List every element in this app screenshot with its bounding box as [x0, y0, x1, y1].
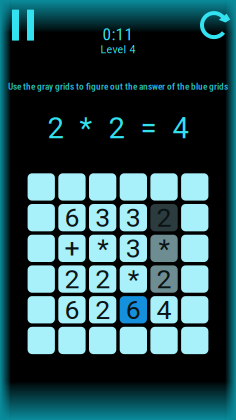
staticText: 6: [64, 202, 79, 233]
button[interactable]: [58, 327, 86, 354]
staticText: +: [64, 233, 79, 264]
button[interactable]: [58, 173, 86, 201]
button[interactable]: 2: [150, 204, 178, 231]
staticText: 2: [95, 294, 110, 325]
staticText: 2: [156, 263, 171, 295]
staticText: 2: [95, 263, 110, 295]
staticText: *: [128, 263, 139, 295]
button[interactable]: [181, 327, 208, 354]
staticText: *: [79, 111, 92, 145]
button[interactable]: 3: [120, 204, 147, 231]
button[interactable]: [120, 173, 147, 201]
staticText: 3: [126, 202, 141, 233]
button[interactable]: [89, 327, 116, 354]
button[interactable]: [28, 296, 55, 323]
button[interactable]: 3: [120, 235, 147, 262]
staticText: 6: [126, 294, 141, 325]
button[interactable]: 6: [120, 296, 147, 323]
button[interactable]: 2: [89, 265, 116, 293]
staticText: Use the gray grids to figure out the ans…: [8, 81, 228, 92]
staticText: Level 4: [100, 43, 135, 56]
button[interactable]: Restart: [192, 3, 236, 47]
button[interactable]: [181, 235, 208, 262]
staticText: *: [158, 233, 169, 264]
button[interactable]: 6: [58, 204, 86, 231]
button[interactable]: [181, 173, 208, 201]
button[interactable]: [28, 235, 55, 262]
button[interactable]: [181, 204, 208, 231]
button[interactable]: [28, 204, 55, 231]
staticText: 3: [126, 233, 141, 264]
button[interactable]: [28, 173, 55, 201]
staticText: 0:11: [102, 24, 133, 44]
button[interactable]: 2: [89, 296, 116, 323]
button[interactable]: 3: [89, 204, 116, 231]
button[interactable]: [89, 173, 116, 201]
button[interactable]: +: [58, 235, 86, 262]
button[interactable]: [150, 173, 178, 201]
staticText: *: [97, 233, 108, 264]
button[interactable]: [120, 327, 147, 354]
button[interactable]: [28, 265, 55, 293]
button[interactable]: *: [120, 265, 147, 293]
staticText: 2: [108, 111, 124, 145]
button[interactable]: Pause: [0, 3, 46, 47]
staticText: 6: [64, 294, 79, 325]
staticText: =: [140, 111, 156, 145]
button[interactable]: 6: [58, 296, 86, 323]
staticText: 2: [156, 202, 171, 233]
button[interactable]: *: [150, 235, 178, 262]
button[interactable]: 2: [150, 265, 178, 293]
button[interactable]: 2: [58, 265, 86, 293]
button[interactable]: *: [89, 235, 116, 262]
button[interactable]: [28, 327, 55, 354]
staticText: 2: [64, 263, 79, 295]
button[interactable]: [181, 296, 208, 323]
staticText: 3: [95, 202, 110, 233]
staticText: 4: [172, 111, 188, 145]
button[interactable]: [150, 327, 178, 354]
staticText: 2: [47, 111, 63, 145]
button[interactable]: [181, 265, 208, 293]
staticText: 4: [156, 294, 171, 325]
button[interactable]: 4: [150, 296, 178, 323]
